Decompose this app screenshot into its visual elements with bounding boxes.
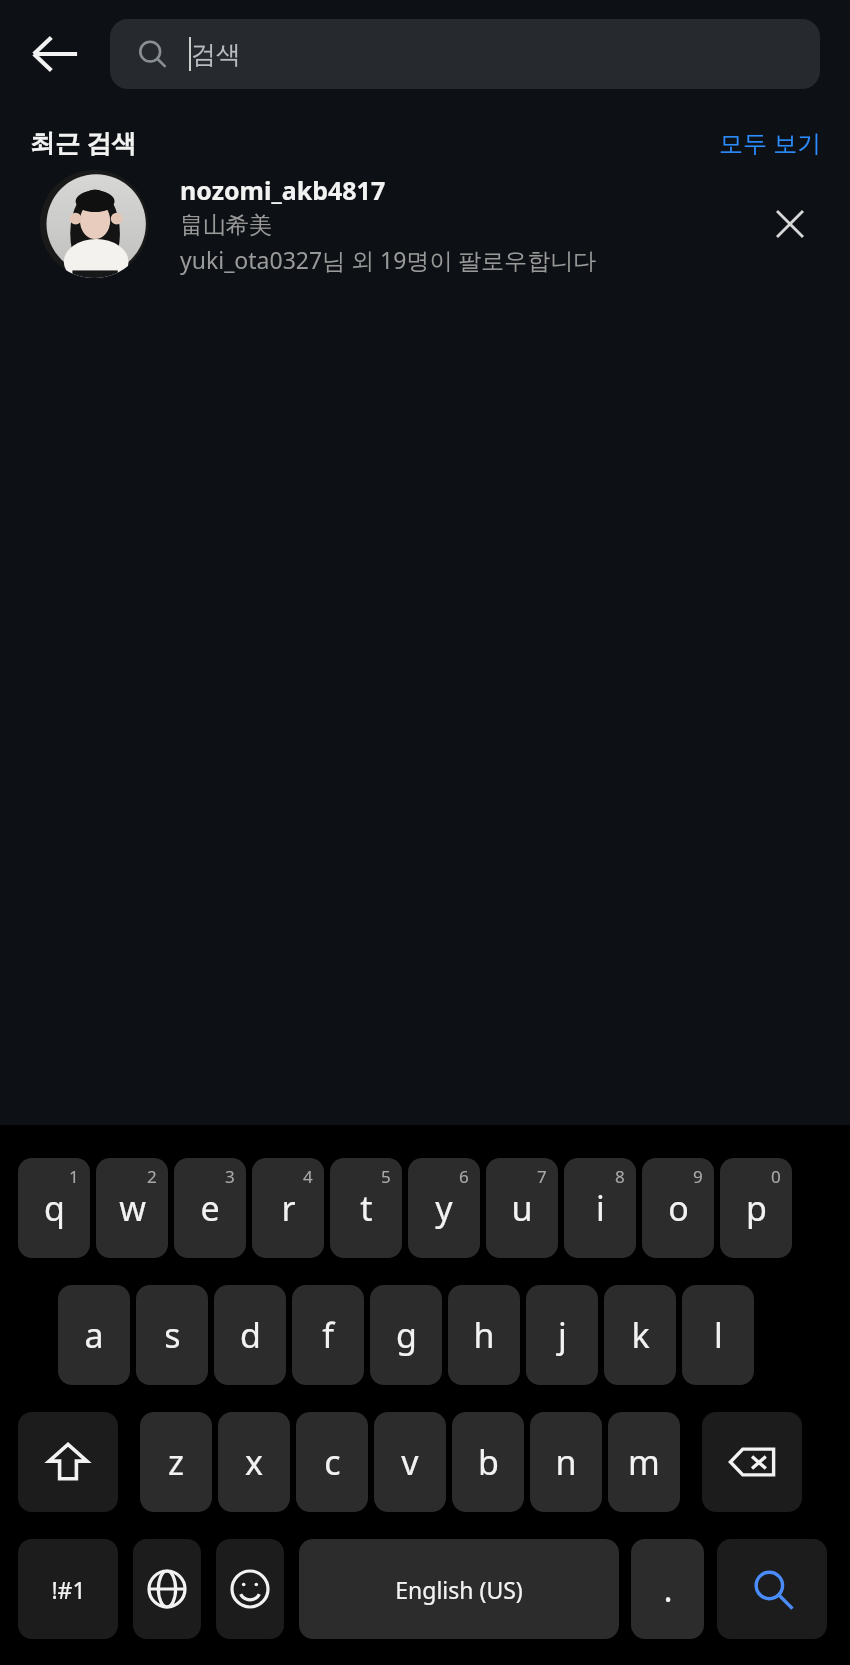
- staticText: e: [200, 1185, 220, 1231]
- staticText: 모두 보기: [719, 126, 822, 159]
- staticText: a: [84, 1312, 104, 1358]
- staticText: h: [473, 1312, 495, 1358]
- button[interactable]: Emoji: [216, 1539, 284, 1639]
- button[interactable]: h: [448, 1285, 520, 1385]
- button[interactable]: t: [330, 1158, 402, 1258]
- button[interactable]: b: [452, 1412, 524, 1512]
- button[interactable]: Search: [717, 1539, 827, 1639]
- button[interactable]: Shift: [18, 1412, 118, 1512]
- staticText: l: [714, 1312, 723, 1358]
- staticText: !#1: [51, 1574, 86, 1605]
- staticText: g: [396, 1312, 417, 1358]
- button[interactable]: 검색: [110, 19, 820, 89]
- button[interactable]: !#1: [18, 1539, 118, 1639]
- staticText: t: [360, 1185, 373, 1231]
- staticText: z: [168, 1439, 184, 1485]
- staticText: 2: [147, 1165, 157, 1188]
- button[interactable]: k: [604, 1285, 676, 1385]
- button[interactable]: c: [296, 1412, 368, 1512]
- staticText: i: [596, 1185, 605, 1231]
- button[interactable]: v: [374, 1412, 446, 1512]
- staticText: 畠山希美: [180, 211, 272, 240]
- staticText: nozomi_akb4817: [180, 173, 386, 207]
- staticText: 1: [69, 1165, 79, 1188]
- button[interactable]: u: [486, 1158, 558, 1258]
- staticText: q: [44, 1185, 65, 1231]
- button[interactable]: Language: [133, 1539, 201, 1639]
- button[interactable]: n: [530, 1412, 602, 1512]
- staticText: 4: [303, 1165, 313, 1188]
- button[interactable]: r: [252, 1158, 324, 1258]
- staticText: 9: [693, 1165, 703, 1188]
- button[interactable]: s: [136, 1285, 208, 1385]
- staticText: 5: [381, 1165, 391, 1188]
- button[interactable]: i: [564, 1158, 636, 1258]
- staticText: y: [435, 1185, 453, 1231]
- button[interactable]: o: [642, 1158, 714, 1258]
- staticText: w: [119, 1185, 146, 1231]
- staticText: m: [628, 1439, 660, 1485]
- button[interactable]: x: [218, 1412, 290, 1512]
- button[interactable]: m: [608, 1412, 680, 1512]
- button[interactable]: nozomi_akb4817: [0, 165, 850, 283]
- button[interactable]: p: [720, 1158, 792, 1258]
- staticText: n: [555, 1439, 577, 1485]
- staticText: k: [631, 1312, 650, 1358]
- button[interactable]: English (US): [299, 1539, 619, 1639]
- button[interactable]: z: [140, 1412, 212, 1512]
- staticText: x: [245, 1439, 263, 1485]
- staticText: j: [558, 1312, 567, 1358]
- staticText: v: [401, 1439, 419, 1485]
- button[interactable]: Backspace: [702, 1412, 802, 1512]
- button[interactable]: y: [408, 1158, 480, 1258]
- button[interactable]: a: [58, 1285, 130, 1385]
- staticText: s: [164, 1312, 181, 1358]
- button[interactable]: f: [292, 1285, 364, 1385]
- button[interactable]: l: [682, 1285, 754, 1385]
- button[interactable]: d: [214, 1285, 286, 1385]
- staticText: o: [668, 1185, 689, 1231]
- button[interactable]: .: [631, 1539, 704, 1639]
- button[interactable]: w: [96, 1158, 168, 1258]
- button[interactable]: j: [526, 1285, 598, 1385]
- button[interactable]: Back: [0, 0, 110, 107]
- staticText: 8: [615, 1165, 625, 1188]
- staticText: 6: [459, 1165, 469, 1188]
- staticText: 3: [225, 1165, 235, 1188]
- staticText: b: [478, 1439, 499, 1485]
- staticText: d: [240, 1312, 261, 1358]
- staticText: p: [746, 1185, 767, 1231]
- staticText: 0: [771, 1165, 781, 1188]
- staticText: English (US): [395, 1574, 523, 1605]
- staticText: 검색: [191, 39, 241, 70]
- staticText: f: [322, 1312, 334, 1358]
- staticText: .: [663, 1566, 673, 1612]
- staticText: 7: [537, 1165, 547, 1188]
- button[interactable]: g: [370, 1285, 442, 1385]
- staticText: c: [324, 1439, 341, 1485]
- staticText: yuki_ota0327님 외 19명이 팔로우합니다: [180, 244, 597, 275]
- button[interactable]: 모두 보기: [719, 126, 822, 159]
- staticText: 최근 검색: [30, 125, 137, 159]
- button[interactable]: q: [18, 1158, 90, 1258]
- staticText: u: [511, 1185, 533, 1231]
- staticText: r: [281, 1185, 296, 1231]
- button[interactable]: e: [174, 1158, 246, 1258]
- button[interactable]: Remove: [755, 189, 825, 259]
